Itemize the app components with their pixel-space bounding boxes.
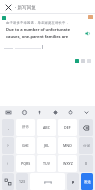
staticText: ABC <box>43 125 50 130</box>
button[interactable]: 发送 <box>81 173 93 190</box>
staticText: WXYZ <box>63 161 73 166</box>
staticText: DEF <box>64 125 71 130</box>
staticText: PQRS <box>21 161 31 166</box>
staticText: 发送 <box>84 180 91 184</box>
button[interactable]: ！ <box>2 155 14 172</box>
button[interactable]: Settings <box>50 107 61 118</box>
button[interactable]: MNO <box>58 137 77 154</box>
button[interactable]: 拼音 <box>16 119 35 136</box>
button[interactable]: 分词 <box>79 137 93 154</box>
button[interactable]: Space <box>30 173 65 190</box>
staticText: 分词 <box>83 144 90 148</box>
staticText: TUV <box>43 161 50 166</box>
button[interactable]: ABC <box>37 119 56 136</box>
button[interactable]: Clipboard <box>65 107 76 118</box>
button[interactable]: Close <box>3 2 13 12</box>
staticText: ！ <box>6 162 10 166</box>
staticText: GHI <box>22 143 29 148</box>
button[interactable]: 123 <box>16 173 28 190</box>
button[interactable]: Comma <box>67 173 79 190</box>
button[interactable]: Emoji <box>19 107 30 118</box>
staticText: ？ <box>6 144 10 148</box>
button[interactable]: Keyboard layout <box>3 107 14 118</box>
staticText: 由于诸多不幸因素，单亲家庭在增长中， <box>6 21 69 25</box>
button[interactable]: Backspace <box>79 119 93 136</box>
staticText: Due to a number of unfortunate <box>6 27 71 32</box>
button[interactable]: TUV <box>37 155 56 172</box>
staticText: , <box>8 125 9 130</box>
button[interactable]: Voice input <box>34 107 45 118</box>
staticText: 0 <box>85 161 87 166</box>
staticText: · 新写回复 <box>15 4 36 10</box>
button[interactable]: JKL <box>37 137 56 154</box>
button[interactable]: PQRS <box>16 155 35 172</box>
staticText: 123 <box>19 179 25 184</box>
button[interactable]: ？ <box>2 137 14 154</box>
button[interactable]: Symbols <box>2 173 14 190</box>
button[interactable]: 0 <box>79 155 93 172</box>
staticText: JKL <box>44 143 50 148</box>
button[interactable]: Play audio <box>84 30 91 37</box>
button[interactable]: Check <box>75 59 79 63</box>
button[interactable]: WXYZ <box>58 155 77 172</box>
button[interactable]: GHI <box>16 137 35 154</box>
button[interactable]: Hide keyboard <box>81 107 92 118</box>
staticText: MNO <box>63 143 72 148</box>
staticText: 拼音 <box>22 125 30 130</box>
staticText: causes, one-parent families are <box>6 34 69 39</box>
button[interactable]: DEF <box>58 119 77 136</box>
